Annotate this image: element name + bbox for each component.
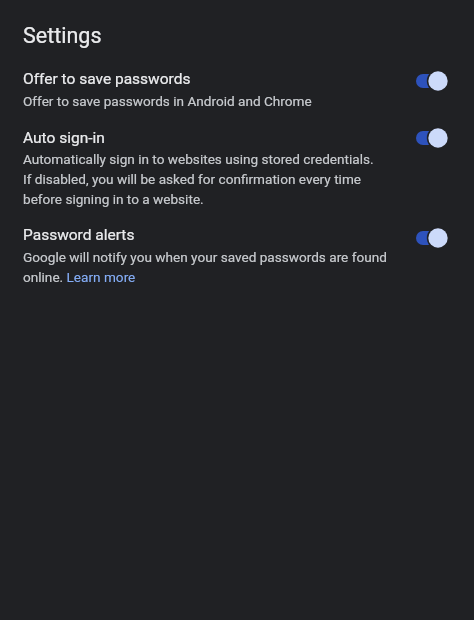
button[interactable] — [416, 128, 448, 148]
staticText: online. Learn more — [23, 269, 136, 285]
button[interactable] — [0, 220, 474, 292]
button[interactable] — [0, 120, 474, 212]
button[interactable] — [416, 228, 448, 248]
staticText: Password alerts — [23, 226, 135, 244]
staticText: before signing in to a website. — [23, 191, 204, 207]
staticText: Google will notify you when your saved p… — [23, 249, 387, 265]
button[interactable] — [62, 266, 136, 288]
staticText: Offer to save passwords in Android and C… — [23, 93, 312, 109]
button[interactable] — [0, 62, 474, 110]
staticText: Offer to save passwords — [23, 70, 191, 88]
staticText: Auto sign-in — [23, 129, 105, 147]
staticText: Automatically sign in to websites using … — [23, 151, 374, 167]
staticText: Settings — [23, 23, 102, 48]
staticText: If disabled, you will be asked for confi… — [23, 171, 362, 187]
button[interactable] — [416, 71, 448, 91]
